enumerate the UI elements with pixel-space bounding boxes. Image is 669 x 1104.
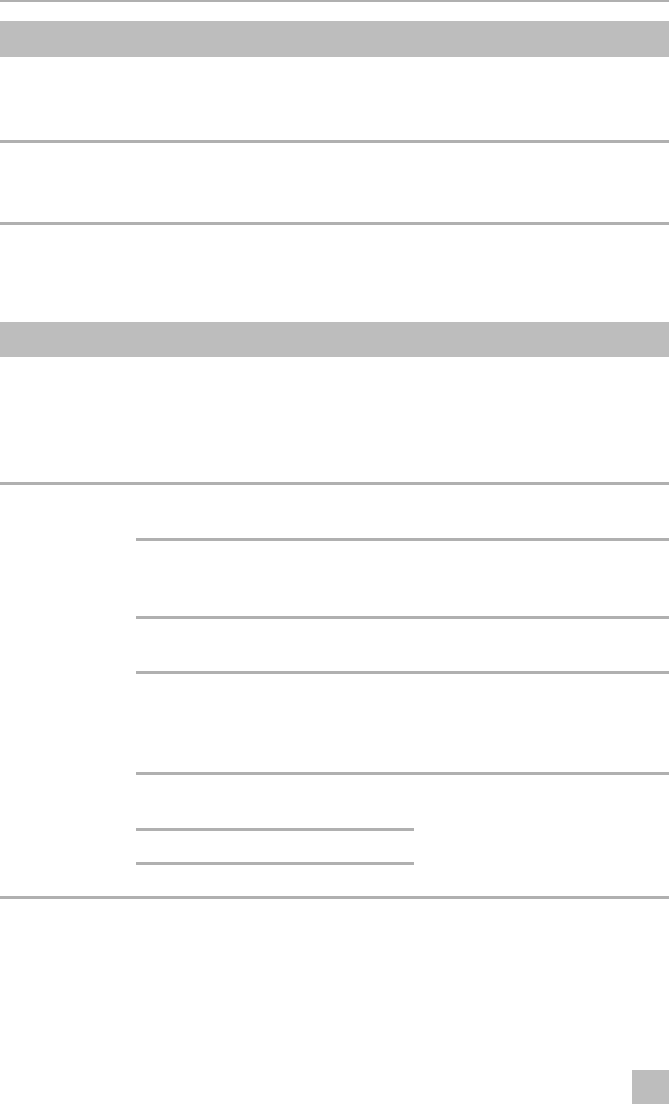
button[interactable]: Row 4	[0, 674, 669, 775]
button[interactable]: Row 6	[0, 831, 669, 865]
button[interactable]: Row 3	[0, 619, 669, 674]
button[interactable]: Row 1	[0, 485, 669, 541]
button[interactable]: Row 5	[0, 775, 669, 831]
button[interactable]: Row 2	[0, 541, 669, 619]
